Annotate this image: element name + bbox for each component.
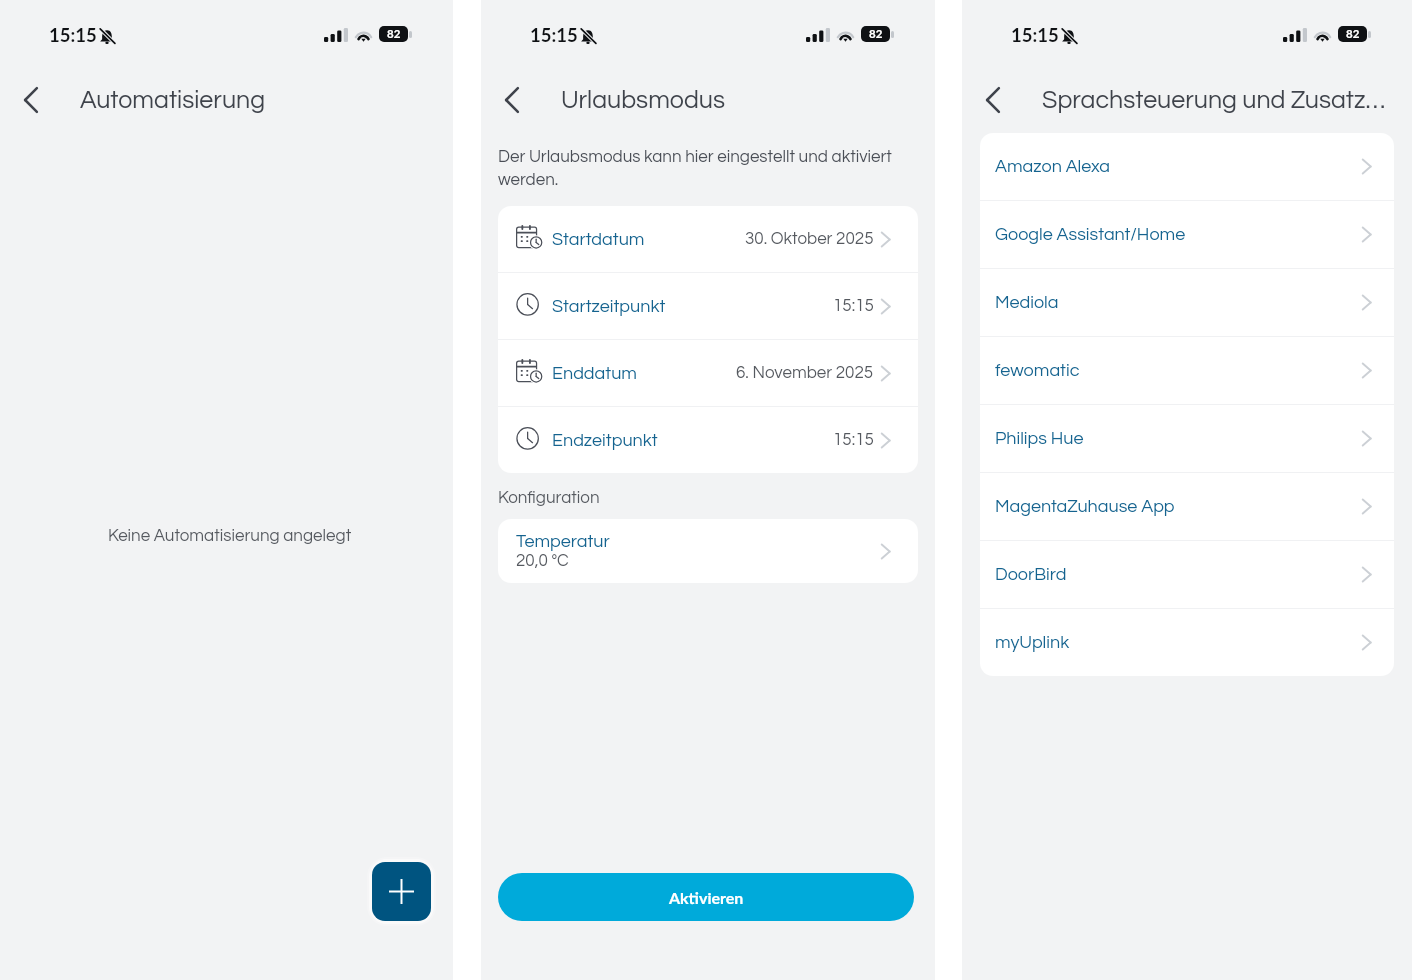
button[interactable]: Amazon Alexa: [980, 133, 1394, 200]
staticText: 30. Oktober 2025: [745, 230, 874, 248]
staticText: 82: [387, 27, 401, 41]
staticText: 6. November 2025: [736, 364, 874, 382]
staticText: 15:15: [530, 24, 578, 46]
staticText: Startdatum: [552, 230, 645, 249]
button[interactable]: Automatisierung hinzufügen: [372, 862, 431, 921]
staticText: 15:15: [49, 24, 97, 46]
button[interactable]: fewomatic: [980, 337, 1394, 404]
staticText: Mediola: [995, 293, 1059, 312]
staticText: 15:15: [833, 431, 874, 449]
button[interactable]: Enddatum: [498, 340, 918, 406]
staticText: Temperatur: [516, 532, 610, 551]
button[interactable]: Aktivieren: [498, 873, 914, 921]
staticText: fewomatic: [995, 361, 1080, 380]
staticText: Enddatum: [552, 364, 637, 383]
button[interactable]: MagentaZuhause App: [980, 473, 1394, 540]
staticText: Startzeitpunkt: [552, 297, 666, 316]
staticText: 15:15: [833, 297, 874, 315]
button[interactable]: Startzeitpunkt: [498, 273, 918, 339]
staticText: Aktivieren: [669, 888, 744, 907]
button[interactable]: Temperatur: [498, 519, 918, 583]
button[interactable]: DoorBird: [980, 541, 1394, 608]
staticText: Sprachsteuerung und Zusatz…: [1042, 87, 1386, 113]
staticText: Urlaubsmodus: [561, 87, 726, 113]
staticText: 82: [1346, 27, 1360, 41]
staticText: DoorBird: [995, 565, 1067, 584]
button[interactable]: Endzeitpunkt: [498, 407, 918, 473]
staticText: Google Assistant/Home: [995, 225, 1186, 244]
button[interactable]: Startdatum: [498, 206, 918, 272]
staticText: MagentaZuhause App: [995, 497, 1175, 516]
button[interactable]: myUplink: [980, 609, 1394, 676]
staticText: Endzeitpunkt: [552, 431, 658, 450]
staticText: 82: [869, 27, 883, 41]
button[interactable]: Zurück: [493, 81, 531, 119]
staticText: 15:15: [1011, 24, 1059, 46]
button[interactable]: Zurück: [12, 81, 50, 119]
button[interactable]: Mediola: [980, 269, 1394, 336]
staticText: Keine Automatisierung angelegt: [108, 527, 352, 545]
staticText: Amazon Alexa: [995, 157, 1111, 176]
staticText: Philips Hue: [995, 429, 1084, 448]
staticText: Automatisierung: [80, 87, 266, 113]
staticText: myUplink: [995, 633, 1070, 652]
staticText: Konfiguration: [498, 489, 600, 507]
button[interactable]: Zurück: [974, 81, 1012, 119]
staticText: Der Urlaubsmodus kann hier eingestellt u…: [498, 148, 923, 189]
staticText: 20,0 °C: [516, 552, 569, 570]
button[interactable]: Philips Hue: [980, 405, 1394, 472]
button[interactable]: Google Assistant/Home: [980, 201, 1394, 268]
